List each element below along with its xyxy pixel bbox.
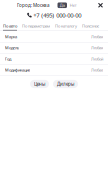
staticText: Дилеры [57,81,74,87]
staticText: Марка [5,34,17,39]
button[interactable]: Дилеры [53,80,78,88]
staticText: По авто [3,23,17,28]
button[interactable]: +7 (495) 000-00-00 [27,11,81,19]
button[interactable]: Город: Москва [17,0,50,10]
staticText: По параметрам [22,23,50,28]
button[interactable]: Полезное [82,20,99,31]
staticText: Да [60,3,65,8]
button[interactable]: Цены [30,80,49,88]
button[interactable]: Модификация [0,65,108,76]
button[interactable]: По каталогу [55,20,77,31]
button[interactable]: Нет [68,2,78,8]
button[interactable]: Марка [0,31,108,43]
staticText: Любой [91,56,103,61]
button[interactable]: По авто [3,20,17,31]
staticText: Любая [91,34,103,39]
staticText: +7 (495) 000-00-00 [33,11,81,19]
button[interactable]: Модель [0,43,108,54]
button[interactable]: Да [57,2,67,8]
staticText: Полезное [82,23,99,28]
button[interactable]: По параметрам [22,20,50,31]
staticText: Любая [91,67,103,73]
staticText: Модель [5,45,19,50]
staticText: По каталогу [55,23,77,28]
button[interactable]: Год [0,54,108,65]
staticText: Модификация [5,67,30,73]
staticText: Нет [70,3,77,8]
staticText: Цены [34,81,45,87]
staticText: Год [5,56,11,61]
button[interactable]: Закрыть [97,0,104,10]
staticText: Любая [91,45,103,50]
staticText: Город: Москва [17,2,50,8]
